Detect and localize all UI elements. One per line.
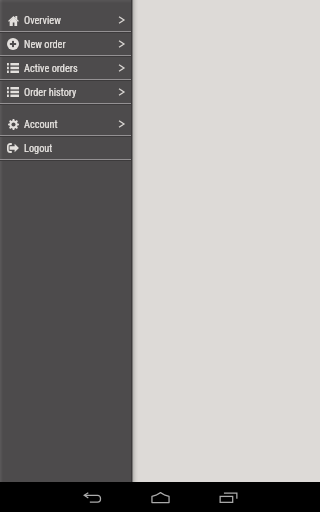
button[interactable]: Order history (0, 81, 132, 103)
button[interactable]: Recent apps (198, 482, 258, 512)
button[interactable]: Active orders (0, 57, 132, 79)
staticText: Logout (24, 142, 53, 154)
button[interactable]: Logout (0, 137, 132, 159)
staticText: New order (24, 38, 66, 50)
staticText: Overview (24, 14, 61, 26)
button[interactable]: New order (0, 33, 132, 55)
button[interactable]: Overview (0, 9, 132, 31)
staticText: Account (24, 118, 58, 130)
button[interactable]: Account (0, 113, 132, 135)
button[interactable]: Back (62, 482, 122, 512)
button[interactable]: Home (130, 482, 190, 512)
staticText: Order history (24, 86, 77, 98)
staticText: Active orders (24, 62, 78, 74)
